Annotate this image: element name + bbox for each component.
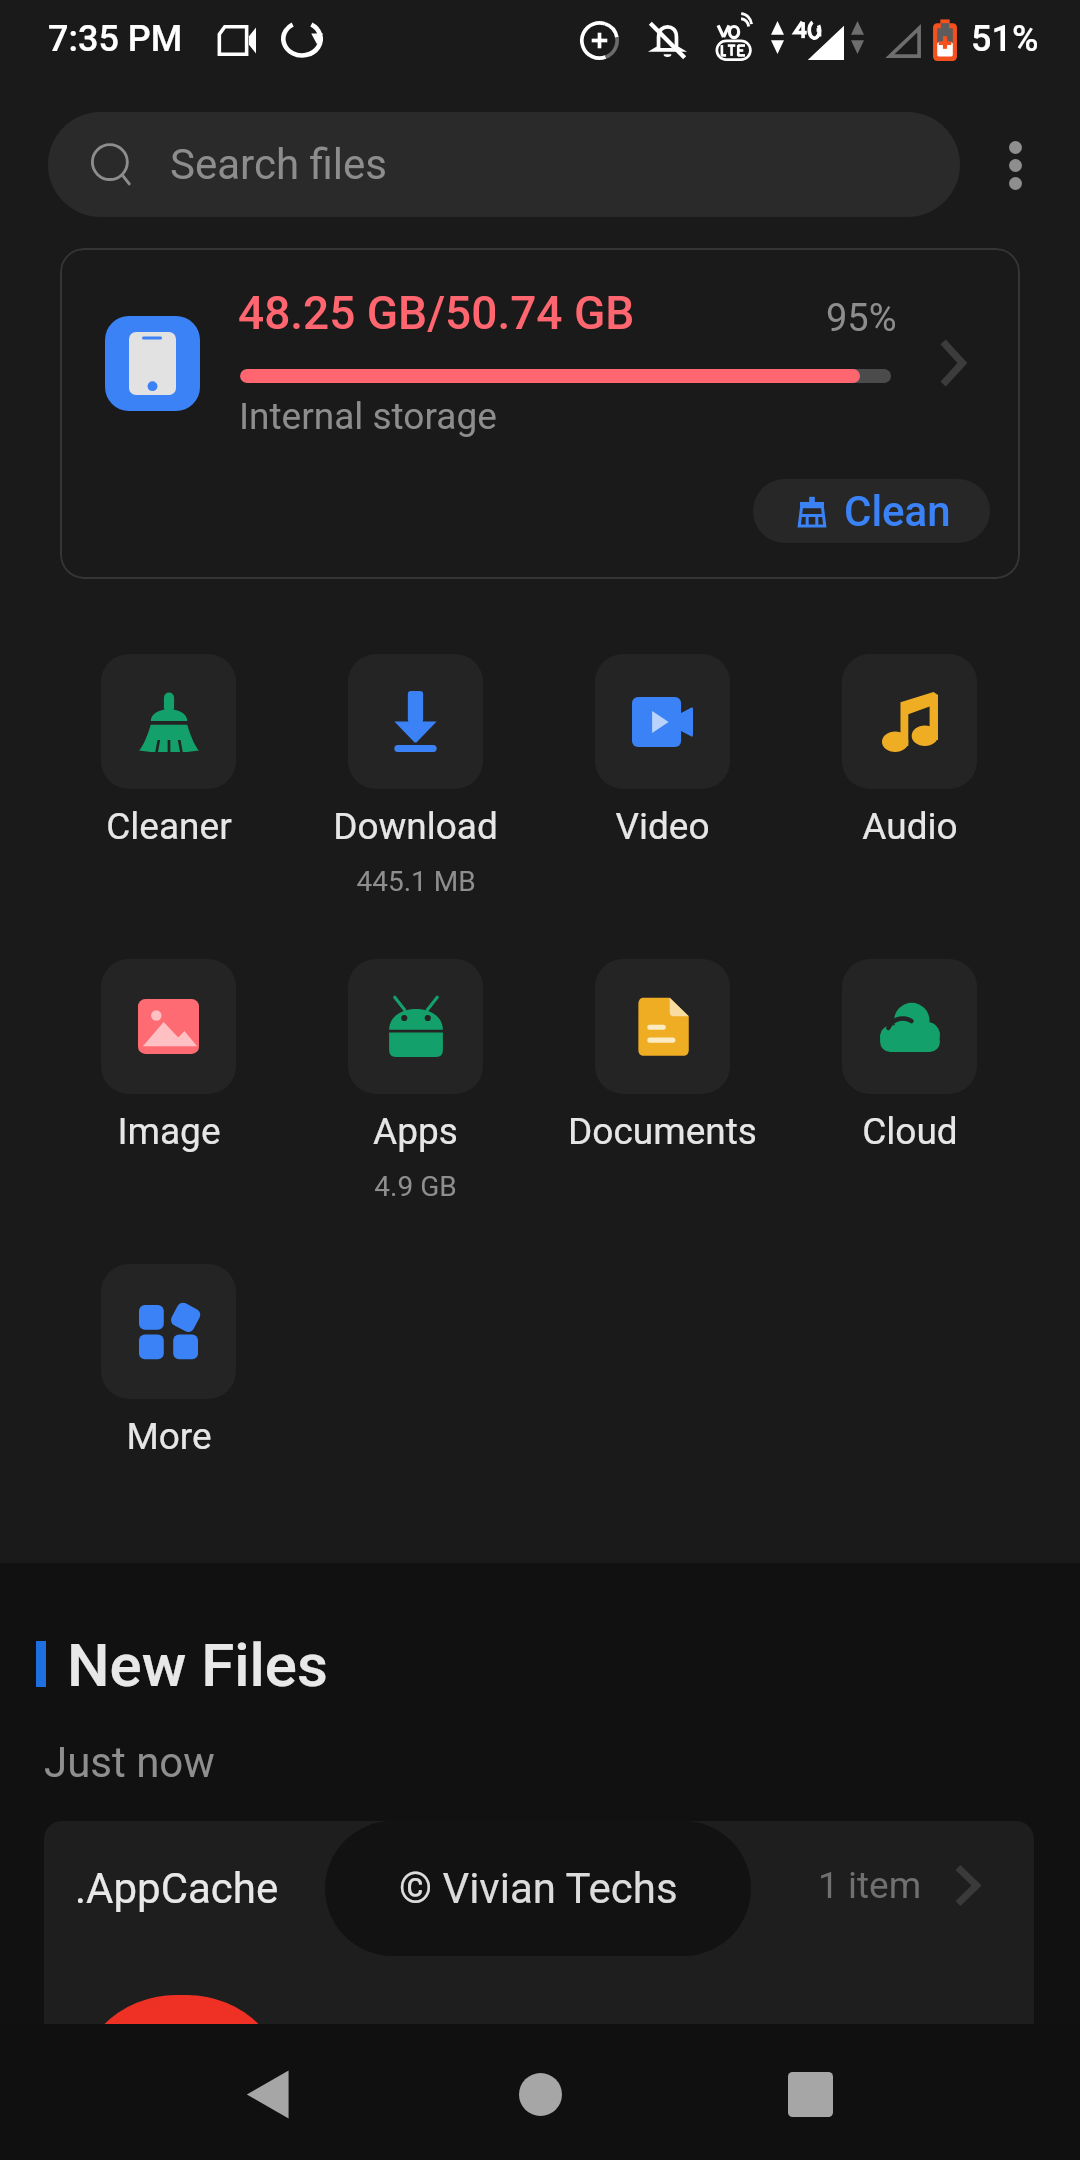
staticText: Cleaner bbox=[106, 805, 232, 848]
staticText: Internal storage bbox=[239, 395, 497, 438]
button[interactable]: Download bbox=[313, 654, 518, 898]
staticText: Apps bbox=[373, 1110, 458, 1153]
staticText: .AppCache bbox=[75, 1864, 279, 1913]
staticText: Video bbox=[615, 805, 710, 848]
button[interactable]: Cleaner bbox=[66, 654, 271, 848]
button[interactable]: Clean bbox=[753, 479, 990, 543]
button[interactable]: Recents bbox=[741, 2046, 879, 2142]
staticText: 1 item bbox=[818, 1864, 922, 1907]
staticText: Clean bbox=[844, 487, 951, 536]
staticText: © Vivian Techs bbox=[399, 1864, 678, 1913]
staticText: 7:35 PM bbox=[48, 18, 183, 60]
staticText: Image bbox=[117, 1110, 221, 1153]
button[interactable]: Search files bbox=[48, 112, 960, 217]
button[interactable]: Home bbox=[471, 2046, 609, 2142]
staticText: Documents bbox=[568, 1110, 757, 1153]
staticText: 445.1 MB bbox=[356, 865, 476, 898]
staticText: 95% bbox=[826, 296, 897, 341]
button[interactable]: .AppCache bbox=[44, 1821, 1034, 2027]
button[interactable]: Back bbox=[198, 2046, 336, 2142]
staticText: Cloud bbox=[862, 1110, 958, 1153]
staticText: Just now bbox=[44, 1738, 215, 1787]
staticText: Search files bbox=[170, 140, 387, 189]
button[interactable]: Audio bbox=[807, 654, 1012, 848]
staticText: More bbox=[126, 1415, 212, 1458]
staticText: 4.9 GB bbox=[374, 1170, 457, 1203]
staticText: New Files bbox=[67, 1630, 328, 1700]
button[interactable]: Documents bbox=[560, 959, 765, 1153]
staticText: 48.25 GB/50.74 GB bbox=[238, 286, 635, 340]
button[interactable]: Video bbox=[560, 654, 765, 848]
button[interactable]: More options bbox=[970, 120, 1060, 210]
button[interactable]: Cloud bbox=[807, 959, 1012, 1153]
button[interactable]: 48.25 GB/50.74 GB bbox=[60, 248, 1020, 579]
button[interactable]: Image bbox=[66, 959, 271, 1153]
staticText: 51% bbox=[971, 18, 1039, 60]
staticText: Audio bbox=[862, 805, 958, 848]
button[interactable]: More bbox=[66, 1264, 271, 1458]
staticText: Download bbox=[333, 805, 498, 848]
button[interactable]: Apps bbox=[313, 959, 518, 1203]
other: Open internal storage bbox=[940, 340, 968, 386]
